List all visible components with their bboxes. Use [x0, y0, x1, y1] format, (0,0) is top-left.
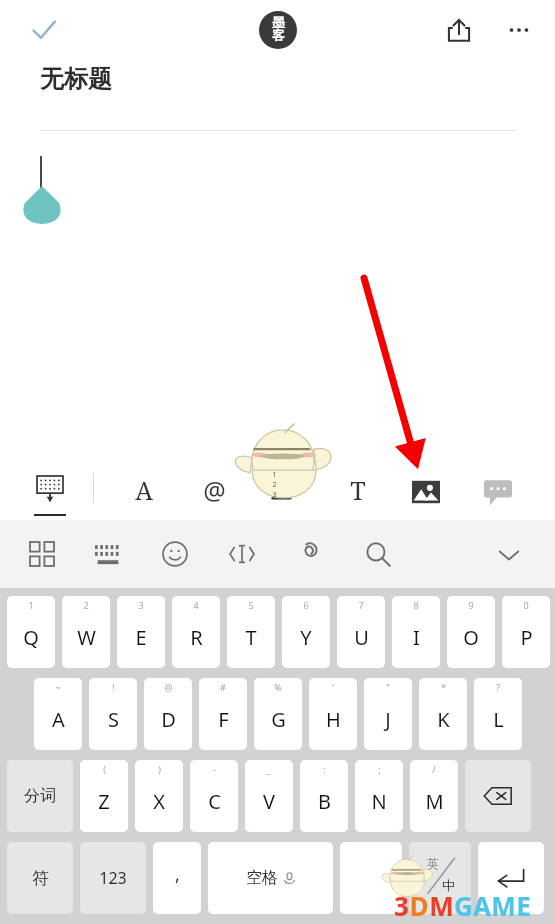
- staticText: T: [350, 473, 366, 507]
- button[interactable]: ,: [153, 842, 201, 914]
- button[interactable]: Text style: [122, 468, 166, 512]
- staticText: 6: [303, 599, 309, 611]
- staticText: :: [323, 763, 326, 775]
- button[interactable]: Numbered list: [258, 472, 294, 508]
- other: Enter: [496, 865, 526, 891]
- staticText: ?: [496, 681, 500, 693]
- button[interactable]: !: [89, 678, 137, 750]
- button[interactable]: 2: [62, 596, 110, 668]
- button[interactable]: 6: [282, 596, 330, 668]
- button[interactable]: 4: [172, 596, 220, 668]
- staticText: Y: [300, 624, 312, 651]
- button[interactable]: 符: [7, 842, 73, 914]
- button[interactable]: (: [80, 760, 128, 832]
- staticText: 7: [358, 599, 364, 611]
- staticText: E: [516, 888, 531, 923]
- staticText: 分词: [24, 786, 56, 806]
- staticText: T: [245, 624, 257, 651]
- button[interactable]: #: [199, 678, 247, 750]
- button[interactable]: Backspace: [465, 760, 531, 832]
- button[interactable]: Done: [24, 10, 64, 50]
- button[interactable]: ~: [34, 678, 82, 750]
- button[interactable]: :: [300, 760, 348, 832]
- button[interactable]: 英: [409, 842, 471, 914]
- staticText: V: [263, 788, 275, 815]
- staticText: K: [437, 706, 450, 733]
- staticText: A: [135, 473, 153, 507]
- staticText: 客: [272, 27, 285, 43]
- staticText: 3: [394, 888, 409, 923]
- button[interactable]: @: [144, 678, 192, 750]
- button[interactable]: 分词: [7, 760, 73, 832]
- button[interactable]: 9: [447, 596, 495, 668]
- button[interactable]: Collapse keyboard: [492, 538, 526, 572]
- button[interactable]: /: [410, 760, 458, 832]
- staticText: O: [463, 624, 479, 651]
- staticText: J: [385, 706, 391, 733]
- button[interactable]: _: [245, 760, 293, 832]
- staticText: ;: [378, 763, 381, 775]
- staticText: 符: [32, 868, 49, 889]
- staticText: 1: [28, 599, 34, 611]
- button[interactable]: 0: [502, 596, 550, 668]
- button[interactable]: 8: [392, 596, 440, 668]
- button[interactable]: Title style: [336, 468, 380, 512]
- staticText: -: [213, 763, 216, 775]
- button[interactable]: *: [419, 678, 467, 750]
- button[interactable]: 5: [227, 596, 275, 668]
- button[interactable]: 7: [337, 596, 385, 668]
- staticText: D: [161, 706, 176, 733]
- staticText: ): [158, 763, 161, 775]
- staticText: R: [190, 624, 203, 651]
- staticText: M: [491, 888, 516, 923]
- button[interactable]: Search: [360, 536, 396, 572]
- staticText: X: [153, 788, 165, 815]
- staticText: 8: [413, 599, 419, 611]
- staticText: 无标题: [40, 64, 112, 94]
- button[interactable]: Comment: [478, 472, 518, 512]
- staticText: G: [454, 888, 473, 923]
- button[interactable]: App logo: [256, 8, 300, 52]
- staticText: (: [103, 763, 106, 775]
- button[interactable]: %: [254, 678, 302, 750]
- button[interactable]: Keyboard menu: [24, 536, 60, 572]
- staticText: /: [432, 763, 436, 775]
- button[interactable]: Insert image: [406, 472, 446, 512]
- button[interactable]: Mention: [192, 468, 236, 512]
- staticText: ": [386, 681, 390, 693]
- staticText: 9: [468, 599, 474, 611]
- staticText: ,: [175, 862, 180, 887]
- staticText: 4: [193, 599, 199, 611]
- other: Backspace: [483, 784, 513, 808]
- staticText: 3: [138, 599, 144, 611]
- button[interactable]: Switch keyboard: [90, 536, 126, 572]
- staticText: L: [493, 706, 504, 733]
- button[interactable]: 1: [7, 596, 55, 668]
- button[interactable]: ‘: [309, 678, 357, 750]
- staticText: A: [52, 706, 65, 733]
- staticText: E: [135, 624, 147, 651]
- button[interactable]: 3: [117, 596, 165, 668]
- button[interactable]: Move cursor: [224, 536, 260, 572]
- button[interactable]: 123: [80, 842, 146, 914]
- button[interactable]: Enter: [478, 842, 544, 914]
- staticText: U: [354, 624, 369, 651]
- button[interactable]: Share: [437, 8, 481, 52]
- button[interactable]: Emoji: [157, 536, 193, 572]
- button[interactable]: [340, 842, 402, 914]
- button[interactable]: ?: [474, 678, 522, 750]
- button[interactable]: Attach: [292, 536, 328, 572]
- staticText: 中: [442, 877, 455, 893]
- staticText: 123: [99, 867, 127, 889]
- button[interactable]: -: [190, 760, 238, 832]
- staticText: Z: [98, 788, 110, 815]
- button[interactable]: 空格: [208, 842, 333, 914]
- button[interactable]: Hide keyboard: [31, 470, 69, 508]
- staticText: 空格: [246, 868, 278, 888]
- button[interactable]: More options: [499, 10, 539, 50]
- staticText: 2: [272, 480, 277, 490]
- button[interactable]: ;: [355, 760, 403, 832]
- button[interactable]: ": [364, 678, 412, 750]
- button[interactable]: ): [135, 760, 183, 832]
- staticText: 3: [272, 490, 277, 500]
